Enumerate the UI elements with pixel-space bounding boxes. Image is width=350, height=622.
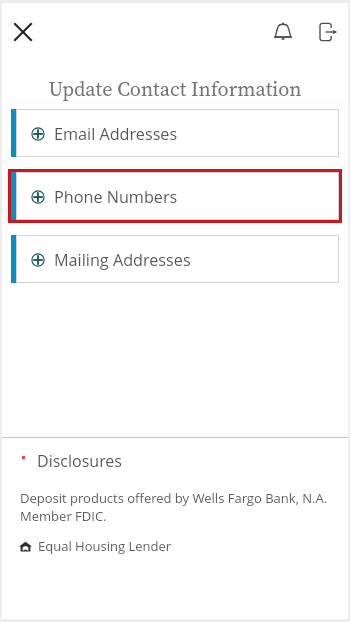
staticText: Disclosures <box>37 450 122 472</box>
staticText: Deposit products offered by Wells Fargo … <box>20 489 328 525</box>
button[interactable]: Phone Numbers <box>11 172 339 220</box>
button[interactable]: Sign off <box>314 18 342 46</box>
staticText: Mailing Addresses <box>54 249 191 271</box>
staticText: Email Addresses <box>54 123 178 145</box>
button[interactable]: Notifications <box>269 17 297 45</box>
button[interactable]: Email Addresses <box>11 109 339 157</box>
staticText: Phone Numbers <box>54 186 178 208</box>
button[interactable]: Mailing Addresses <box>11 235 339 283</box>
button[interactable]: Close <box>10 19 36 45</box>
staticText: Equal Housing Lender <box>38 537 172 555</box>
staticText: Update Contact Information <box>2 75 348 103</box>
button[interactable]: Disclosures <box>19 452 122 474</box>
